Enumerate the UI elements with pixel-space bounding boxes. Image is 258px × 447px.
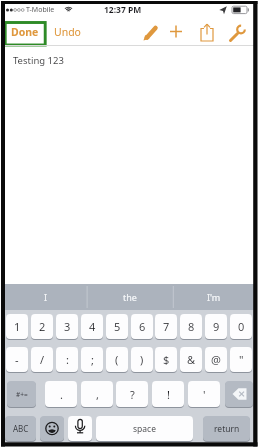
button[interactable]: 7 xyxy=(155,314,177,339)
staticText: & xyxy=(187,352,196,367)
button[interactable]: / xyxy=(31,347,53,372)
staticText: , xyxy=(96,387,99,402)
staticText: space xyxy=(133,423,156,435)
button[interactable]: 5 xyxy=(106,314,128,339)
staticText: T-Mobile xyxy=(26,5,55,15)
button[interactable]: : xyxy=(56,347,78,372)
staticText: 12:37 PM xyxy=(104,4,142,16)
staticText: . xyxy=(60,387,63,402)
staticText: ) xyxy=(140,352,144,367)
button[interactable]: ) xyxy=(131,347,153,372)
staticText: 1 xyxy=(14,319,21,334)
button[interactable]: . xyxy=(45,381,77,407)
staticText: 3 xyxy=(64,319,71,334)
button[interactable]: 2 xyxy=(31,314,53,339)
button[interactable]: I'm xyxy=(173,284,254,310)
button[interactable]: 9 xyxy=(205,314,227,339)
staticText: I'm xyxy=(207,291,221,303)
staticText: ! xyxy=(167,387,170,402)
staticText: ABC xyxy=(13,423,29,434)
button[interactable]: 0 xyxy=(230,314,252,339)
button[interactable]: 1 xyxy=(6,314,28,339)
staticText: 4 xyxy=(89,319,96,334)
staticText: 7 xyxy=(163,319,170,334)
button[interactable]: I xyxy=(4,284,87,310)
button[interactable]: return xyxy=(203,416,250,441)
button[interactable]: @ xyxy=(205,347,227,372)
button[interactable]: 6 xyxy=(131,314,153,339)
button[interactable]: the xyxy=(87,284,173,310)
staticText: ( xyxy=(115,352,119,367)
staticText: @ xyxy=(211,352,221,367)
button[interactable]: 8 xyxy=(180,314,202,339)
staticText: $ xyxy=(163,352,170,367)
button[interactable] xyxy=(198,24,216,42)
staticText: the xyxy=(123,291,137,303)
button[interactable]: ABC xyxy=(5,416,36,441)
button[interactable]: " xyxy=(230,347,252,372)
staticText: - xyxy=(15,352,19,367)
button[interactable] xyxy=(68,416,92,441)
button[interactable]: & xyxy=(180,347,202,372)
button[interactable] xyxy=(227,24,247,42)
button[interactable]: $ xyxy=(155,347,177,372)
staticText: 9 xyxy=(213,319,220,334)
button[interactable] xyxy=(140,24,160,42)
button[interactable]: Undo xyxy=(54,25,81,39)
staticText: : xyxy=(66,352,69,367)
button[interactable] xyxy=(225,381,253,407)
button[interactable]: space xyxy=(96,416,193,441)
staticText: 2 xyxy=(39,319,46,334)
staticText: return xyxy=(214,423,240,435)
staticText: 5 xyxy=(114,319,121,334)
staticText: 8 xyxy=(188,319,195,334)
staticText: I xyxy=(44,291,48,303)
button[interactable] xyxy=(168,24,186,42)
button[interactable]: ; xyxy=(81,347,103,372)
staticText: Testing 123 xyxy=(13,54,64,67)
button[interactable]: Done xyxy=(11,25,39,39)
staticText: #+= xyxy=(16,390,28,399)
button[interactable]: ' xyxy=(188,381,220,407)
staticText: ; xyxy=(91,352,94,367)
button[interactable]: #+= xyxy=(7,381,36,407)
button[interactable]: 4 xyxy=(81,314,103,339)
button[interactable]: - xyxy=(6,347,28,372)
button[interactable]: ? xyxy=(116,381,148,407)
button[interactable]: 3 xyxy=(56,314,78,339)
staticText: 6 xyxy=(139,319,146,334)
staticText: " xyxy=(239,352,244,367)
staticText: ' xyxy=(203,387,206,402)
staticText: 0 xyxy=(238,319,245,334)
button[interactable] xyxy=(40,416,64,441)
button[interactable]: , xyxy=(81,381,113,407)
staticText: / xyxy=(40,352,45,367)
button[interactable]: ( xyxy=(106,347,128,372)
button[interactable]: ! xyxy=(152,381,184,407)
staticText: ? xyxy=(130,387,135,402)
